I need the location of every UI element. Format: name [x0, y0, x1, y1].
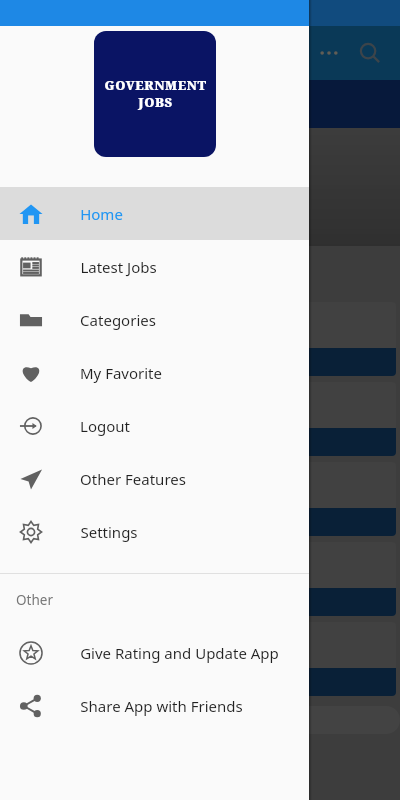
staticText: Give Rating and Update App [80, 643, 279, 663]
staticText: 2 ACT [183, 178, 218, 196]
staticText: Latest Jobs [80, 257, 157, 277]
staticText: Share App with Friends [80, 696, 243, 716]
staticText: Install [179, 95, 221, 114]
staticText: Other [16, 591, 53, 609]
staticText: Settings [80, 522, 138, 542]
button[interactable]: Latest Jobs [0, 240, 309, 293]
button[interactable]: Other Features [0, 452, 309, 505]
staticText: Other Features [80, 469, 186, 489]
button[interactable]: Logout [0, 399, 309, 452]
button[interactable]: Search [352, 35, 388, 71]
button[interactable]: Share App with Friends [0, 679, 309, 732]
staticText: Home [80, 204, 123, 224]
staticText: GOVERNMENT [104, 77, 207, 94]
button[interactable]: My Favorite [0, 346, 309, 399]
button[interactable]: Categories [0, 293, 309, 346]
staticText: JOBS [138, 94, 173, 111]
staticText: Logout [80, 416, 130, 436]
staticText: My Favorite [80, 363, 162, 383]
staticText: Categories [80, 310, 156, 330]
button[interactable]: Home [0, 187, 309, 240]
button[interactable]: Give Rating and Update App [0, 626, 309, 679]
button[interactable]: GOVERNMENT [94, 31, 216, 157]
button[interactable]: Settings [0, 505, 309, 558]
